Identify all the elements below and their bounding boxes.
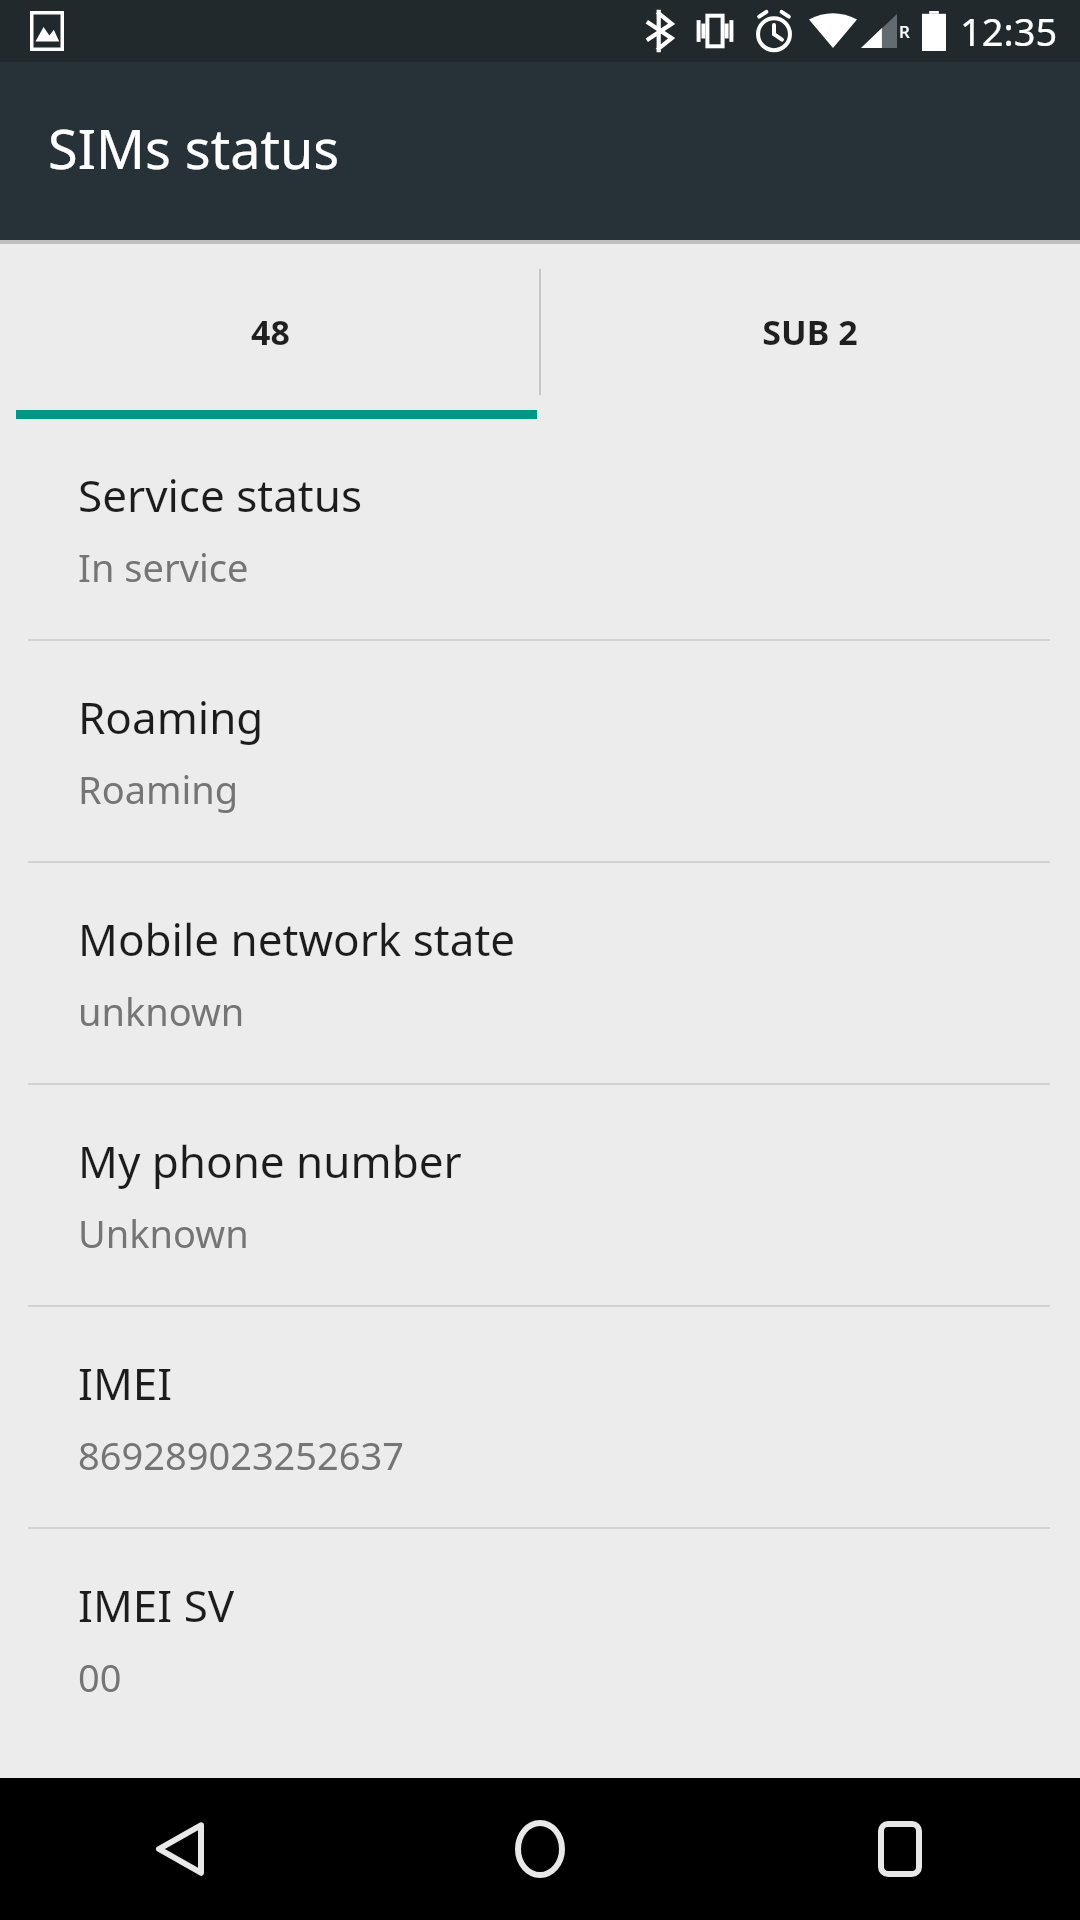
button[interactable]: Service status: [0, 419, 1080, 639]
button[interactable]: My phone number: [0, 1085, 1080, 1305]
staticText: Unknown: [78, 1207, 249, 1259]
button[interactable]: Recent apps: [720, 1778, 1080, 1920]
staticText: 12:35: [960, 5, 1058, 57]
staticText: unknown: [78, 985, 245, 1037]
button[interactable]: IMEI: [0, 1307, 1080, 1527]
staticText: SIMs status: [48, 111, 340, 185]
staticText: 48: [251, 309, 290, 355]
staticText: 00: [78, 1651, 122, 1703]
button[interactable]: Home: [360, 1778, 720, 1920]
button[interactable]: 48: [0, 244, 540, 419]
staticText: In service: [78, 541, 249, 593]
staticText: IMEI SV: [78, 1575, 235, 1635]
button[interactable]: IMEI SV: [0, 1529, 1080, 1749]
staticText: Mobile network state: [78, 909, 516, 969]
staticText: 869289023252637: [78, 1429, 405, 1481]
staticText: Roaming: [78, 687, 264, 747]
button[interactable]: Back: [0, 1778, 360, 1920]
staticText: SUB 2: [762, 309, 858, 355]
staticText: IMEI: [78, 1353, 173, 1413]
staticText: My phone number: [78, 1131, 462, 1191]
staticText: Roaming: [78, 763, 239, 815]
staticText: R: [899, 20, 910, 43]
staticText: Service status: [78, 465, 363, 525]
button[interactable]: Mobile network state: [0, 863, 1080, 1083]
button[interactable]: Roaming: [0, 641, 1080, 861]
button[interactable]: SUB 2: [540, 244, 1080, 419]
